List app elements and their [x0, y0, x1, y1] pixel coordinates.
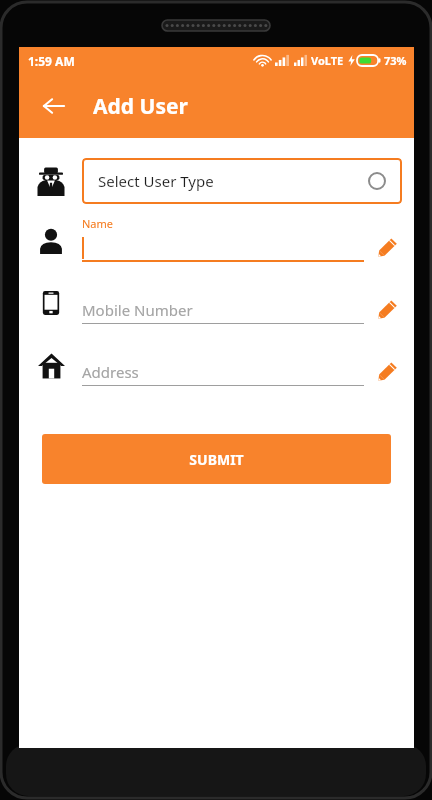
staticText: Add User — [93, 92, 188, 121]
button[interactable]: Address — [33, 350, 402, 386]
button[interactable]: Mobile Number — [33, 288, 402, 324]
button[interactable]: Name — [33, 216, 402, 262]
staticText: Select User Type — [98, 171, 368, 191]
staticText: 1:59 AM — [28, 53, 75, 69]
button[interactable]: Select User Type — [82, 158, 402, 204]
staticText: Mobile Number — [82, 300, 193, 320]
button[interactable]: SUBMIT — [42, 434, 391, 484]
staticText: Address — [82, 362, 139, 382]
staticText: VoLTE — [311, 53, 344, 68]
button[interactable]: Edit mobile number — [372, 294, 402, 324]
staticText: SUBMIT — [189, 450, 244, 469]
staticText: Name — [82, 216, 114, 231]
button[interactable]: Edit address — [372, 356, 402, 386]
staticText: 73% — [384, 53, 407, 68]
button[interactable]: Edit name — [372, 232, 402, 262]
button[interactable]: Back — [33, 85, 75, 127]
